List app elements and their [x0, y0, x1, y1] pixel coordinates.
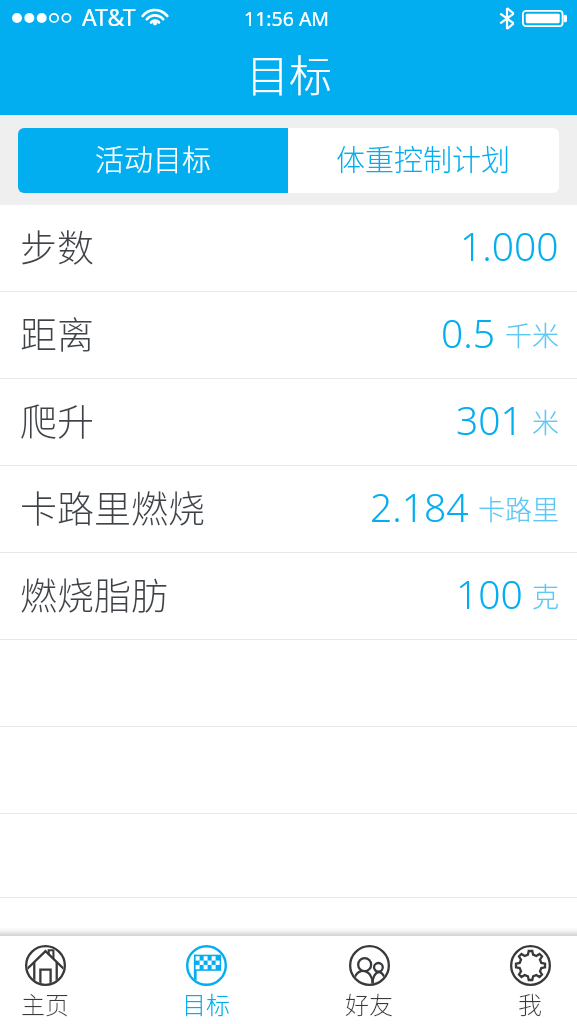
- staticText: 目标: [182, 986, 230, 1021]
- staticText: 1.000: [460, 219, 559, 272]
- button[interactable]: 体重控制计划: [288, 128, 559, 193]
- button[interactable]: 步数: [0, 205, 577, 292]
- staticText: 100: [456, 567, 523, 620]
- staticText: 卡路里燃烧: [20, 480, 205, 534]
- staticText: 我: [518, 986, 542, 1021]
- staticText: 米: [532, 402, 559, 441]
- button[interactable]: 距离: [0, 292, 577, 379]
- staticText: AT&T: [82, 1, 136, 32]
- staticText: 步数: [20, 219, 94, 273]
- staticText: 克: [532, 576, 559, 615]
- button[interactable]: 活动目标: [18, 128, 288, 193]
- staticText: 千米: [505, 315, 559, 354]
- staticText: 活动目标: [95, 137, 212, 179]
- staticText: 主页: [21, 986, 69, 1021]
- staticText: 0.5: [441, 306, 496, 359]
- button[interactable]: 燃烧脂肪: [0, 553, 577, 640]
- staticText: 燃烧脂肪: [20, 567, 168, 621]
- staticText: 卡路里: [478, 489, 559, 528]
- button[interactable]: Goals: [181, 945, 231, 1021]
- button[interactable]: 卡路里燃烧: [0, 466, 577, 553]
- button[interactable]: Me: [505, 945, 555, 1021]
- staticText: 301: [456, 393, 523, 446]
- button[interactable]: Home: [20, 945, 70, 1021]
- button[interactable]: 爬升: [0, 379, 577, 466]
- button[interactable]: Friends: [344, 945, 394, 1021]
- staticText: 目标: [246, 42, 332, 104]
- staticText: 2.184: [370, 480, 469, 533]
- staticText: 11:56 AM: [244, 5, 330, 32]
- staticText: 爬升: [20, 393, 94, 447]
- staticText: 体重控制计划: [336, 137, 511, 179]
- staticText: 好友: [345, 986, 393, 1021]
- staticText: 距离: [20, 306, 94, 360]
